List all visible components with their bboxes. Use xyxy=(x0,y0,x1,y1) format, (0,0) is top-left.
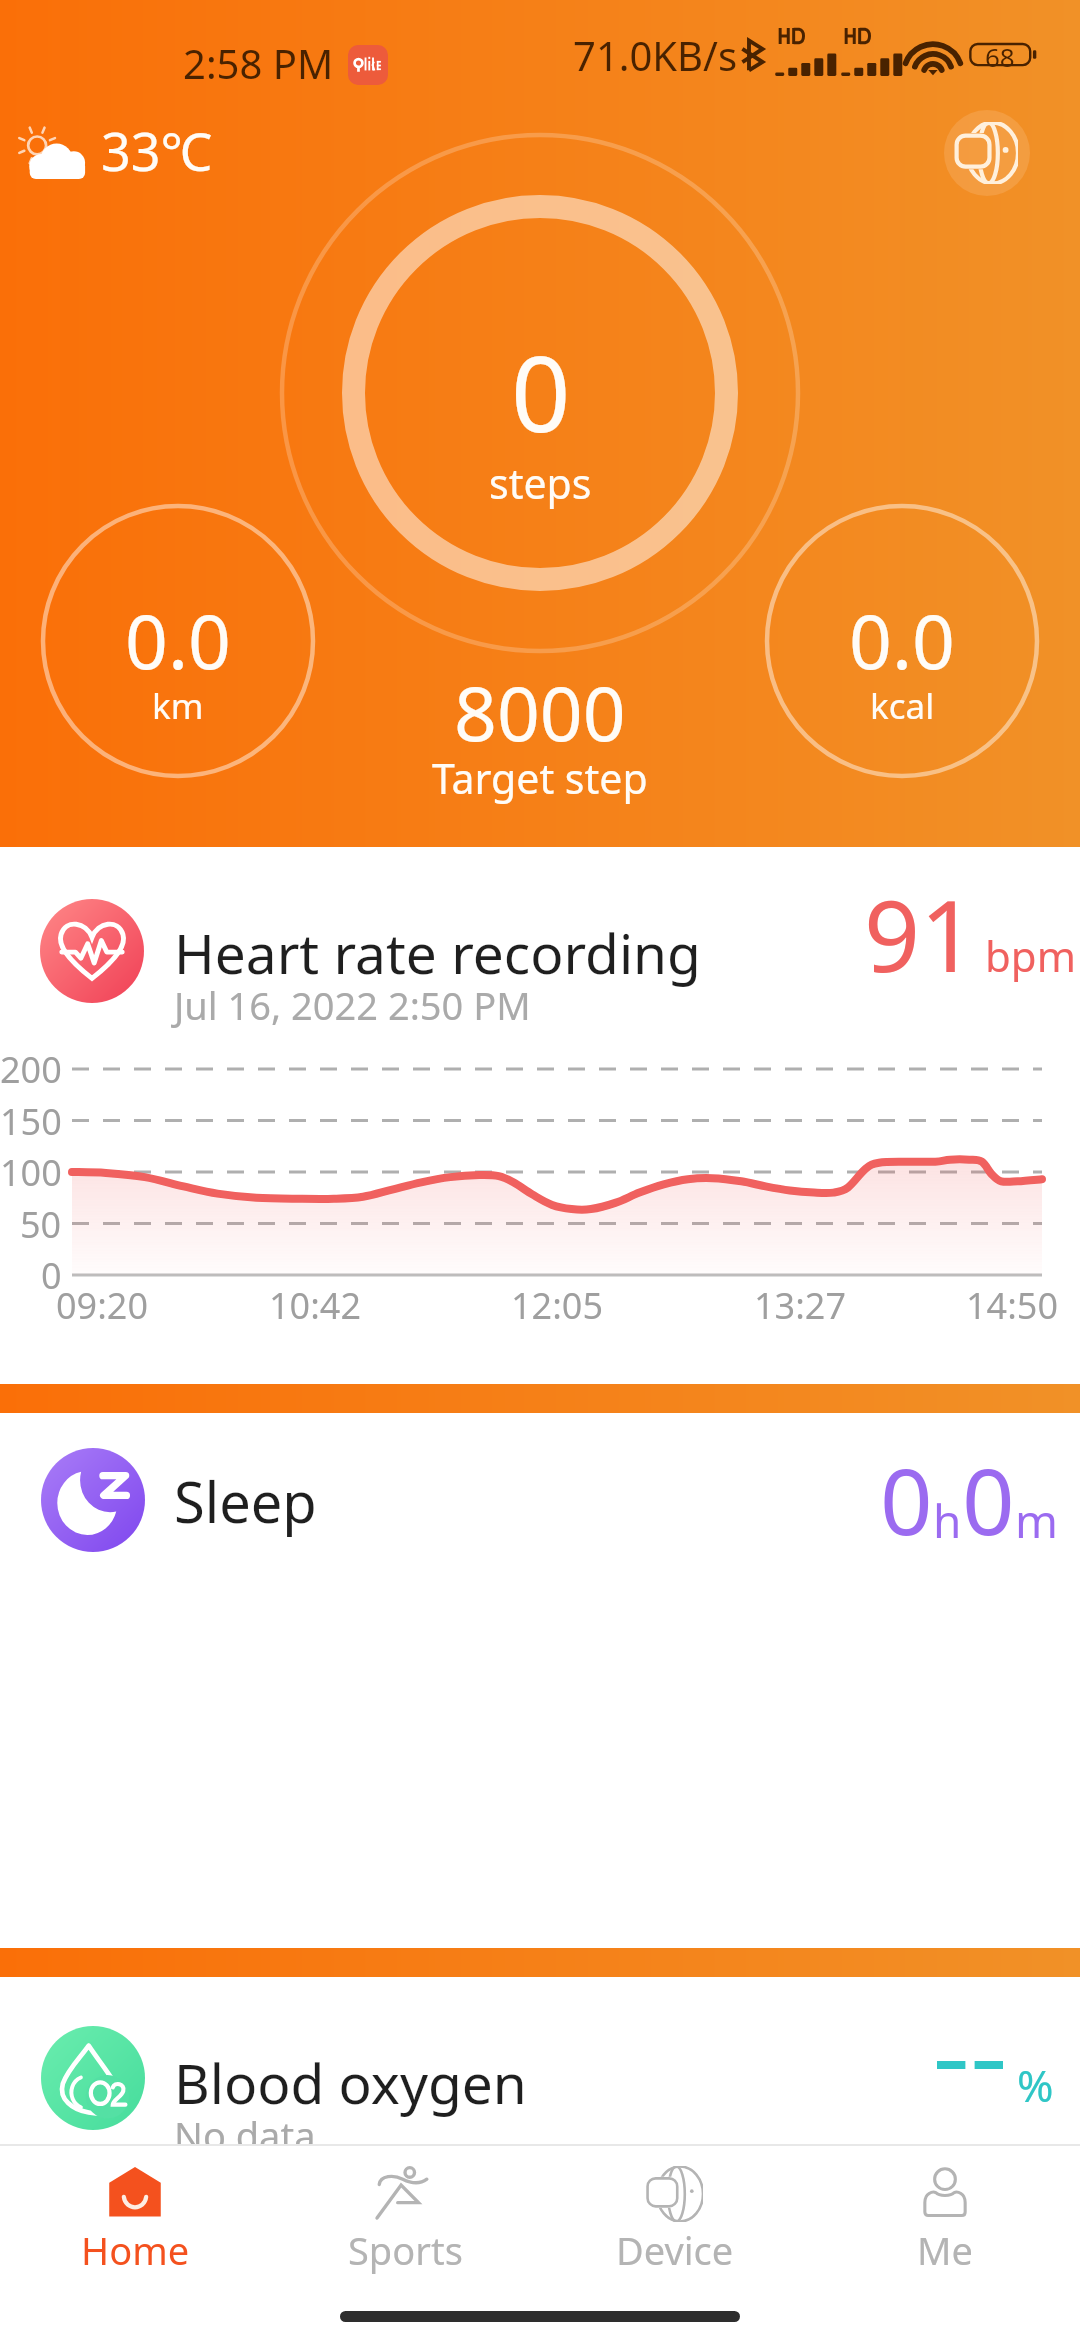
staticText: Target step xyxy=(432,750,648,806)
staticText: 0 xyxy=(962,1437,1015,1562)
staticText: 0 xyxy=(880,1437,933,1562)
staticText: % xyxy=(1017,2055,1054,2115)
staticText: 100 xyxy=(0,1148,62,1197)
staticText: Me xyxy=(917,2224,973,2276)
staticText: Sports xyxy=(348,2224,463,2276)
staticText: bpm xyxy=(985,927,1076,984)
staticText: m xyxy=(1015,1489,1059,1552)
staticText: Blood oxygen xyxy=(174,2045,527,2120)
staticText: 91 xyxy=(864,867,977,1000)
button[interactable]: Sleep xyxy=(0,1413,1080,1948)
staticText: 14:50 xyxy=(966,1281,1059,1330)
staticText: 13:27 xyxy=(754,1281,847,1330)
button[interactable]: Device xyxy=(944,110,1030,196)
staticText: 0.0 xyxy=(125,589,231,691)
staticText: No data xyxy=(174,2109,316,2161)
staticText: kcal xyxy=(870,682,935,730)
button[interactable]: Heart rate recording xyxy=(0,847,1080,1384)
staticText: 0 xyxy=(511,321,571,463)
staticText: km xyxy=(152,682,204,730)
staticText: 8000 xyxy=(454,661,626,763)
staticText: Jul 16, 2022 2:50 PM xyxy=(174,979,531,1031)
staticText: 150 xyxy=(0,1097,62,1146)
staticText: Device xyxy=(616,2224,734,2276)
staticText: Home xyxy=(81,2224,190,2276)
button[interactable]: 0.0 xyxy=(78,589,278,739)
button[interactable]: 33℃ xyxy=(5,111,219,201)
staticText: 09:20 xyxy=(56,1281,149,1330)
staticText: 2:58 PM xyxy=(183,36,334,90)
button[interactable]: Sports xyxy=(270,2146,540,2286)
button[interactable]: Blood oxygen xyxy=(0,1977,1080,2144)
staticText: 71.0KB/s xyxy=(573,28,738,82)
button[interactable]: 0 xyxy=(0,321,1080,519)
button[interactable]: Home xyxy=(0,2146,270,2286)
staticText: 68 xyxy=(985,39,1015,74)
staticText: steps xyxy=(489,455,592,511)
staticText: Heart rate recording xyxy=(174,915,701,990)
button[interactable]: Device xyxy=(540,2146,810,2286)
staticText: h xyxy=(933,1489,962,1552)
staticText: 0 xyxy=(41,1251,62,1300)
button[interactable]: 0.0 xyxy=(802,589,1002,739)
button[interactable]: Me xyxy=(810,2146,1080,2286)
staticText: 0.0 xyxy=(849,589,955,691)
staticText: Sleep xyxy=(174,1463,317,1539)
staticText: 200 xyxy=(0,1045,62,1094)
staticText: 12:05 xyxy=(511,1281,604,1330)
staticText: 33℃ xyxy=(101,115,213,186)
staticText: 10:42 xyxy=(269,1281,362,1330)
staticText: 50 xyxy=(20,1200,62,1249)
